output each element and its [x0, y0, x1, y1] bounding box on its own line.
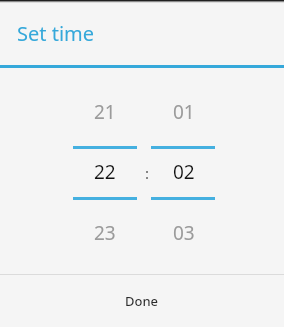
staticText: 02	[173, 159, 195, 185]
staticText: 03	[173, 220, 195, 246]
button[interactable]: 23	[73, 213, 137, 253]
staticText: 23	[94, 220, 116, 246]
button[interactable]: 03	[152, 213, 216, 253]
button[interactable]: 22	[73, 152, 137, 192]
button[interactable]: 21	[73, 92, 137, 132]
button[interactable]: 02	[152, 152, 216, 192]
staticText: Set time	[17, 20, 95, 47]
staticText: 22	[94, 159, 116, 185]
button[interactable]: 01	[152, 92, 216, 132]
staticText: 21	[94, 99, 116, 125]
staticText: :	[145, 163, 150, 183]
staticText: Done	[125, 292, 159, 310]
staticText: 01	[173, 99, 195, 125]
button[interactable]: Done	[0, 275, 284, 327]
